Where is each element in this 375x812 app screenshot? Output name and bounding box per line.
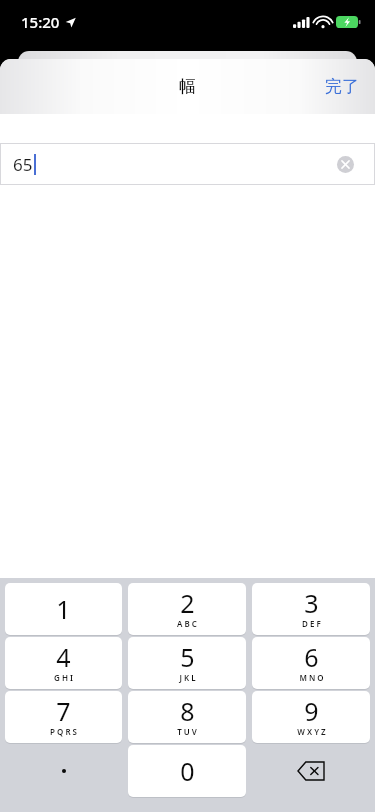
staticText: T U V (177, 726, 197, 737)
staticText: 9 (304, 694, 319, 728)
staticText: 3 (304, 586, 319, 620)
button[interactable]: Clear text (337, 156, 354, 173)
staticText: P Q R S (50, 726, 77, 737)
button[interactable]: 0 (128, 745, 246, 797)
staticText: G H I (54, 672, 73, 683)
staticText: 2 (180, 586, 195, 620)
staticText: 1 (56, 592, 71, 626)
staticText: 7 (56, 694, 71, 728)
staticText: A B C (177, 618, 197, 629)
staticText: 5 (180, 640, 195, 674)
button[interactable]: 8 (128, 691, 246, 743)
button[interactable]: 65 (0, 143, 375, 185)
button[interactable]: 3 (252, 583, 370, 635)
button[interactable]: 7 (5, 691, 122, 743)
button[interactable]: 完了 (309, 66, 375, 107)
staticText: M N O (299, 672, 324, 683)
staticText: 65 (13, 153, 33, 176)
staticText: 15:20 (21, 12, 60, 32)
staticText: 4 (56, 640, 71, 674)
staticText: 幅 (179, 76, 196, 97)
staticText: 0 (180, 754, 195, 788)
staticText: 完了 (325, 76, 359, 97)
staticText: D E F (302, 618, 321, 629)
button[interactable]: 4 (5, 637, 122, 689)
button[interactable]: 1 (5, 583, 122, 635)
staticText: W X Y Z (297, 726, 326, 737)
staticText: 6 (304, 640, 319, 674)
button[interactable]: Backspace (252, 745, 370, 797)
staticText: J K L (179, 672, 196, 683)
button[interactable]: 6 (252, 637, 370, 689)
staticText: 8 (180, 694, 195, 728)
button[interactable]: 5 (128, 637, 246, 689)
button[interactable]: 2 (128, 583, 246, 635)
button[interactable]: 9 (252, 691, 370, 743)
button[interactable] (5, 745, 122, 797)
